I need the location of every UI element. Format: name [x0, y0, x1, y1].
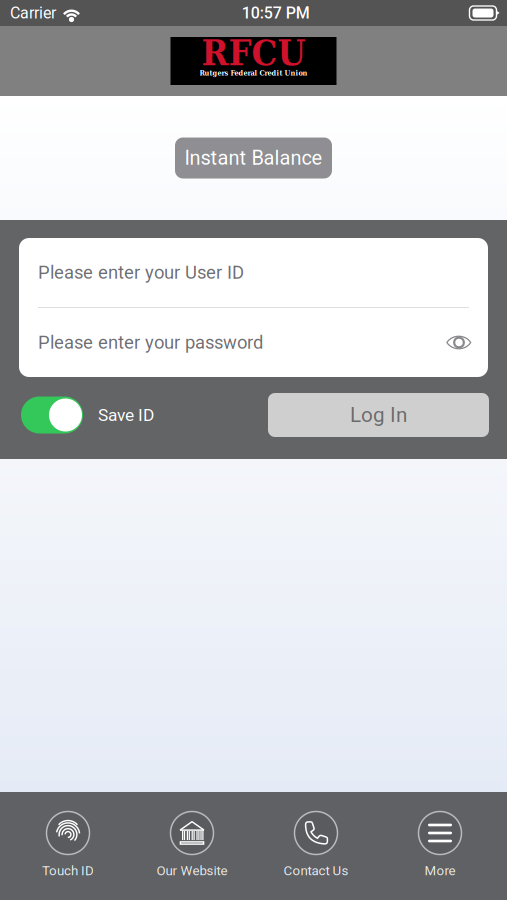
staticText: Touch ID	[42, 863, 94, 879]
staticText: Rutgers Federal Credit Union	[199, 69, 307, 77]
staticText: Contact Us	[283, 863, 348, 879]
staticText: 10:57 PM	[242, 4, 310, 22]
staticText: Save ID	[98, 405, 154, 425]
staticText: More	[424, 863, 455, 879]
button[interactable]: Contact Us	[254, 792, 378, 900]
button[interactable]: Save ID	[21, 396, 83, 433]
button[interactable]: Log In	[268, 393, 489, 437]
button[interactable]: Touch ID	[6, 792, 130, 900]
button[interactable]: Our Website	[130, 792, 254, 900]
staticText: Our Website	[156, 863, 227, 879]
button[interactable]: More	[378, 792, 502, 900]
staticText: Instant Balance	[184, 146, 322, 170]
button[interactable]: Show password	[442, 325, 476, 359]
staticText: Please enter your User ID	[38, 262, 244, 283]
staticText: RFCU	[201, 31, 305, 74]
staticText: Log In	[350, 403, 407, 427]
button[interactable]: Instant Balance	[175, 137, 332, 178]
staticText: Carrier	[10, 4, 56, 22]
staticText: Please enter your password	[38, 332, 263, 353]
